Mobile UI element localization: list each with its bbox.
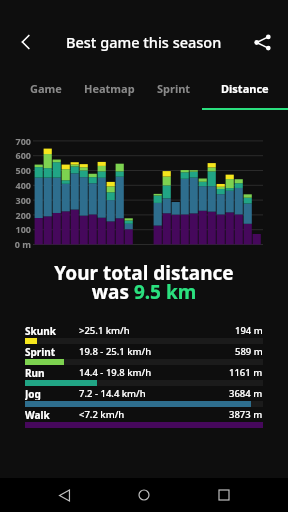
staticText: 300 bbox=[0, 194, 31, 206]
staticText: Heatmap bbox=[84, 81, 135, 96]
button[interactable]: Sprint bbox=[146, 74, 202, 116]
button[interactable]: Run bbox=[25, 366, 263, 387]
staticText: 700 bbox=[0, 135, 31, 147]
button[interactable]: Walk bbox=[25, 408, 263, 429]
staticText: 14.4 - 19.8 km/h bbox=[79, 366, 229, 379]
staticText: 3684 m bbox=[229, 387, 263, 400]
staticText: 600 bbox=[0, 149, 31, 161]
staticText: Game bbox=[30, 81, 62, 96]
staticText: 3873 m bbox=[229, 408, 263, 421]
staticText: Run bbox=[25, 366, 79, 379]
staticText: Skunk bbox=[25, 324, 79, 337]
staticText: 194 m bbox=[235, 324, 263, 337]
staticText: 7.2 - 14.4 km/h bbox=[79, 387, 229, 400]
staticText: Sprint bbox=[25, 345, 79, 358]
button[interactable]: Heatmap bbox=[73, 74, 146, 116]
button[interactable]: Share bbox=[246, 26, 278, 58]
button[interactable]: Sprint bbox=[25, 345, 263, 366]
staticText: 1161 m bbox=[229, 366, 263, 379]
staticText: >25.1 km/h bbox=[79, 324, 235, 337]
button[interactable]: Back bbox=[48, 479, 80, 511]
button[interactable]: Jog bbox=[25, 387, 263, 408]
staticText: 200 bbox=[0, 209, 31, 221]
staticText: 589 m bbox=[235, 345, 263, 358]
staticText: Your total distance was 9.5 km bbox=[54, 260, 234, 304]
staticText: Distance bbox=[221, 81, 269, 96]
staticText: <7.2 km/h bbox=[79, 408, 229, 421]
button[interactable]: Game bbox=[19, 74, 73, 116]
staticText: Walk bbox=[25, 408, 79, 421]
staticText: 100 bbox=[0, 223, 31, 235]
staticText: Sprint bbox=[157, 81, 191, 96]
staticText: Jog bbox=[25, 387, 79, 400]
staticText: 400 bbox=[0, 179, 31, 191]
button[interactable]: Recents bbox=[208, 479, 240, 511]
staticText: 500 bbox=[0, 164, 31, 176]
button[interactable]: Skunk bbox=[25, 324, 263, 345]
button[interactable]: Back bbox=[8, 24, 44, 60]
staticText: 19.8 - 25.1 km/h bbox=[79, 345, 235, 358]
staticText: Best game this season bbox=[66, 32, 222, 52]
staticText: 0 m bbox=[0, 238, 31, 250]
button[interactable]: Home bbox=[128, 479, 160, 511]
button[interactable]: Distance bbox=[202, 74, 288, 116]
